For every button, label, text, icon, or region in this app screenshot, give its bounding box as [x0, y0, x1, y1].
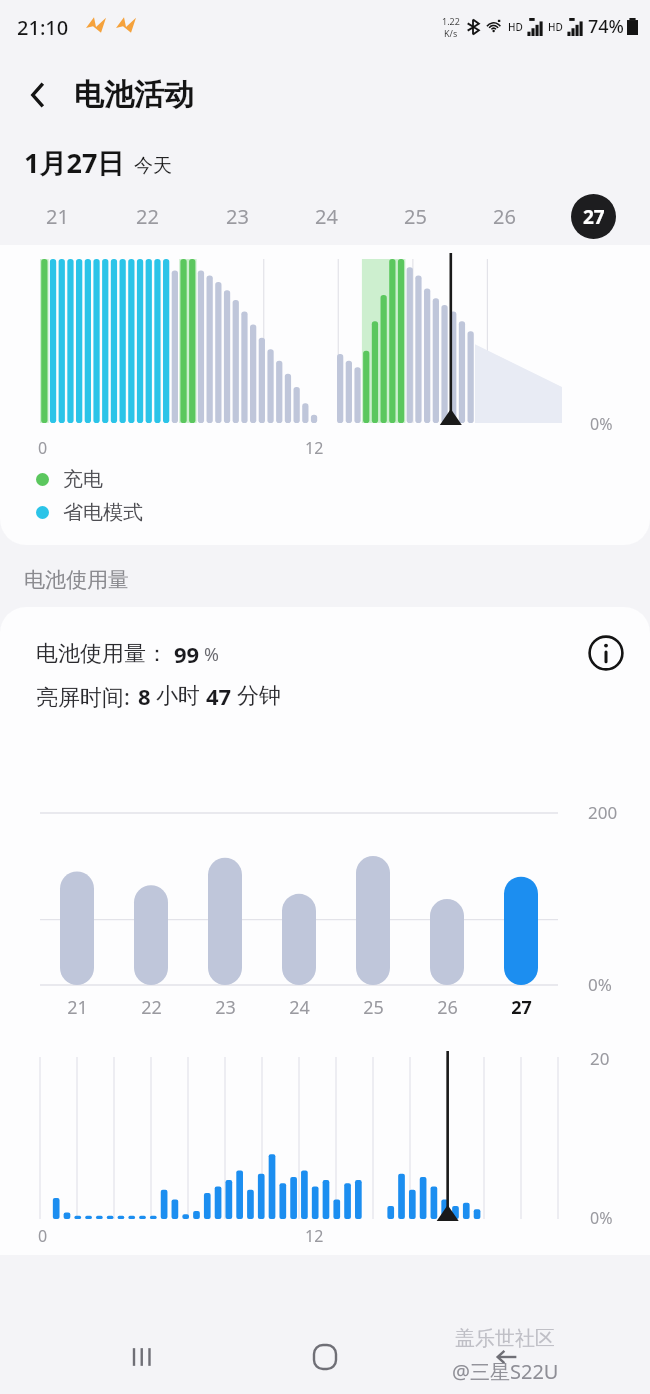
staticText: 21 [67, 995, 88, 1020]
button[interactable]: 24 [282, 187, 371, 245]
staticText: 99 [174, 639, 200, 669]
button[interactable]: 0% [0, 245, 650, 545]
staticText: 22 [136, 203, 159, 230]
staticText: 盖乐世社区 [455, 1326, 555, 1351]
staticText: 25 [404, 203, 427, 230]
staticText: % [204, 642, 219, 667]
staticText: 0% [590, 1207, 613, 1229]
button[interactable]: Back [12, 69, 64, 121]
button[interactable]: 省电模式 [36, 500, 143, 525]
staticText: 23 [215, 995, 236, 1020]
staticText: 25 [363, 995, 384, 1020]
button[interactable]: 26 [460, 187, 549, 245]
staticText: 8 [138, 681, 151, 711]
button[interactable]: 22 [102, 187, 192, 245]
staticText: 26 [437, 995, 458, 1020]
staticText: HD [508, 20, 523, 34]
staticText: 21:10 [17, 14, 69, 41]
button[interactable]: Information [584, 631, 628, 675]
staticText: 1.22 [442, 15, 460, 27]
staticText: 24 [315, 203, 338, 230]
staticText: 47 [206, 681, 232, 711]
staticText: 0 [38, 1225, 48, 1247]
staticText: 23 [226, 203, 249, 230]
staticText: 充电 [63, 467, 103, 492]
staticText: 小时 [156, 682, 200, 710]
staticText: 74% [588, 14, 624, 39]
button[interactable]: 27 [549, 187, 638, 245]
button[interactable]: 充电 [36, 467, 103, 492]
staticText: 今天 [134, 154, 172, 178]
staticText: 0 [38, 437, 48, 459]
staticText: 27 [583, 204, 605, 230]
staticText: 26 [493, 203, 516, 230]
staticText: 22 [141, 995, 162, 1020]
staticText: HD [548, 20, 563, 34]
staticText: 亮屏时间: [36, 681, 130, 711]
staticText: 200 [588, 801, 618, 824]
staticText: 0% [590, 413, 613, 435]
staticText: @三星S22U [452, 1358, 559, 1385]
button[interactable]: Home [287, 1320, 363, 1394]
staticText: 24 [289, 995, 310, 1020]
staticText: 20 [590, 1047, 610, 1070]
staticText: 12 [305, 1225, 324, 1247]
staticText: 12 [305, 437, 324, 459]
staticText: 分钟 [237, 682, 281, 710]
staticText: 21 [46, 203, 69, 230]
button[interactable]: Back [469, 1320, 545, 1394]
button[interactable]: Recents [106, 1320, 182, 1394]
button[interactable]: 25 [371, 187, 460, 245]
staticText: 电池活动 [74, 76, 194, 114]
staticText: 电池使用量： [36, 640, 168, 668]
staticText: 电池使用量 [24, 567, 129, 593]
staticText: 1月27日 [24, 144, 125, 181]
button[interactable]: 23 [192, 187, 282, 245]
staticText: 省电模式 [63, 500, 143, 525]
button[interactable]: 21 [12, 187, 102, 245]
staticText: K/s [444, 27, 458, 39]
staticText: 0% [588, 973, 612, 996]
staticText: 27 [511, 995, 532, 1020]
